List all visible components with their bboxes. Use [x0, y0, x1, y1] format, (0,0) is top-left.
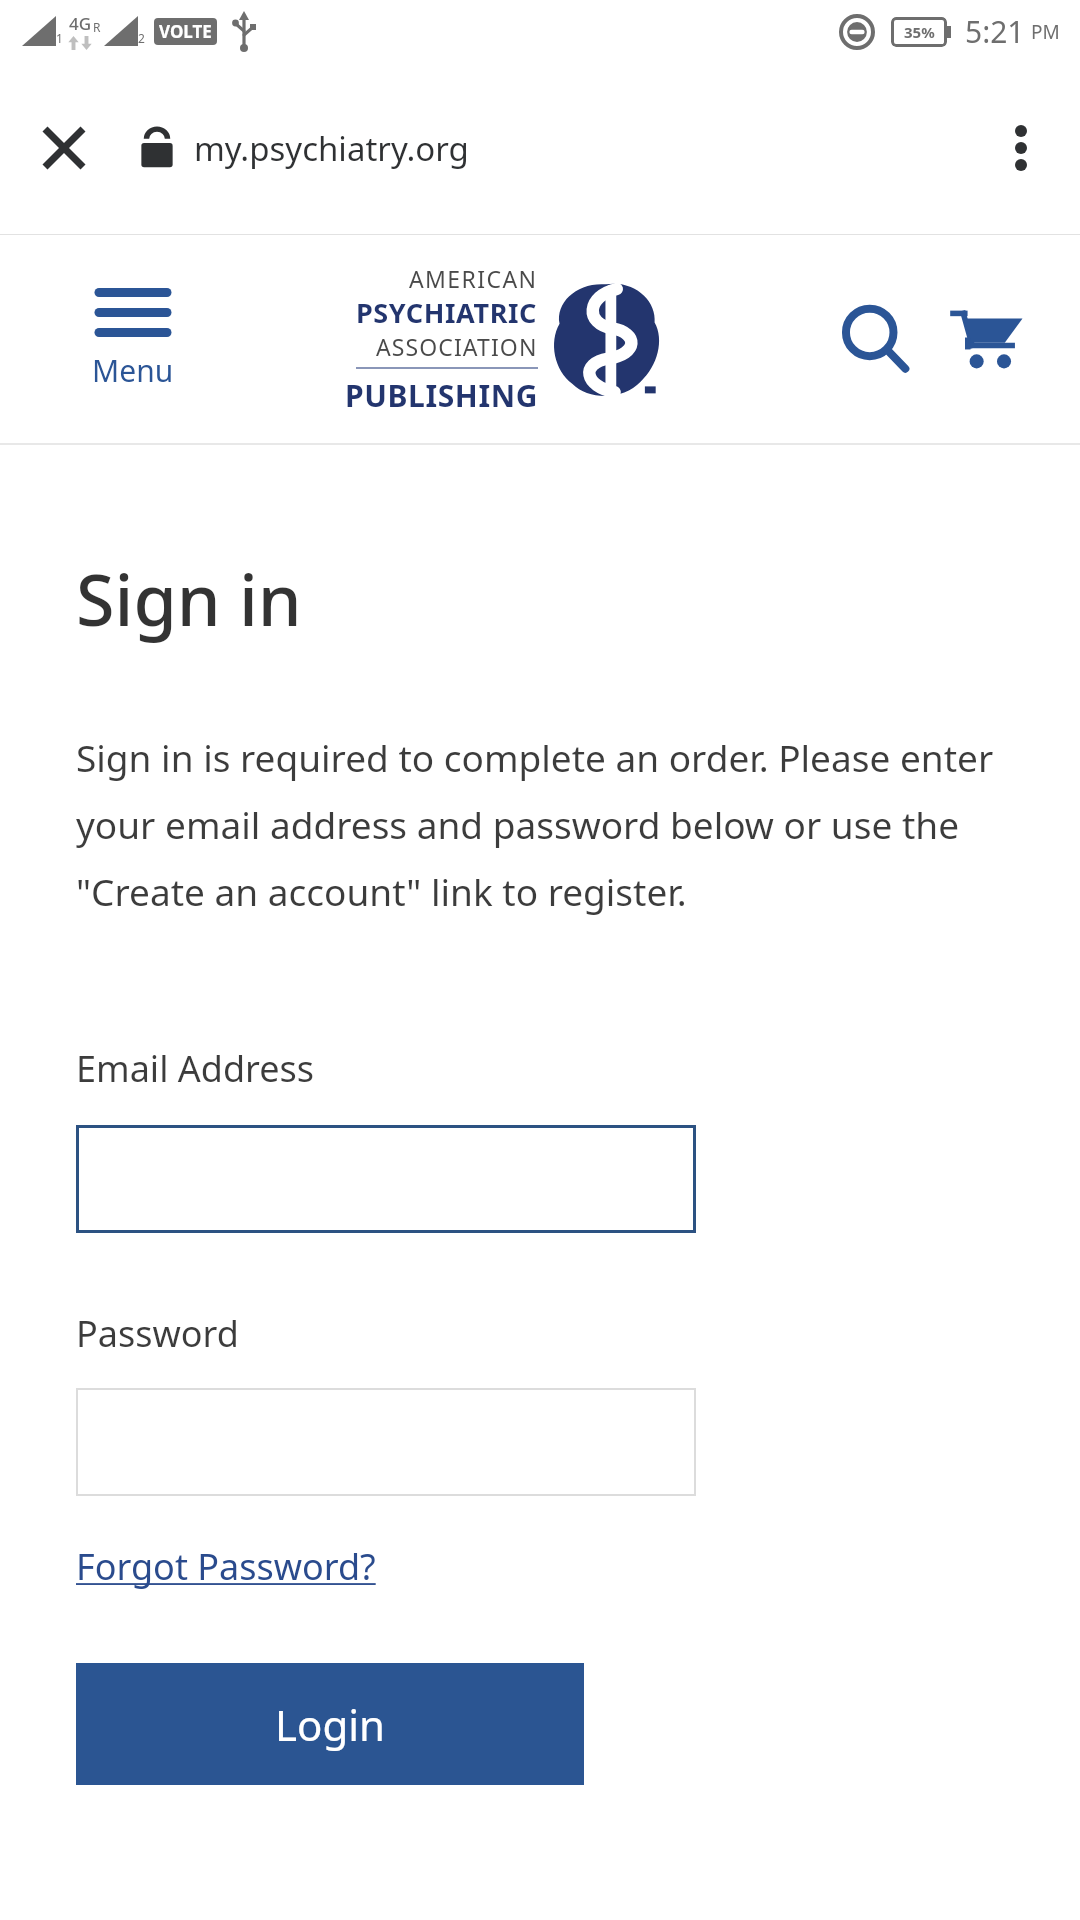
staticText: Sign in is required to complete an order…	[76, 732, 1020, 916]
staticText: PM	[1031, 19, 1060, 45]
button[interactable]: Menu	[92, 288, 174, 391]
button[interactable]: Email Address input	[76, 1125, 696, 1233]
staticText: 35%	[904, 22, 935, 42]
button[interactable]: Login	[76, 1663, 584, 1785]
staticText: 1	[56, 30, 63, 46]
staticText: Forgot Password?	[76, 1542, 376, 1591]
staticText: Login	[275, 1696, 386, 1753]
staticText: Menu	[92, 350, 174, 391]
button[interactable]: Forgot Password?	[76, 1542, 376, 1591]
staticText: 2	[138, 30, 145, 46]
staticText: Sign in	[76, 551, 302, 646]
staticText: PUBLISHING	[345, 375, 538, 416]
button[interactable]: Password input	[76, 1388, 696, 1496]
staticText: VOLTE	[159, 20, 212, 43]
staticText: AMERICAN	[409, 263, 538, 294]
staticText: Email Address	[76, 1044, 315, 1093]
button[interactable]: Search	[832, 296, 918, 382]
staticText: my.psychiatry.org	[194, 126, 469, 171]
staticText: 5:21	[965, 11, 1025, 52]
staticText: R	[93, 19, 101, 35]
staticText: ASSOCIATION	[376, 331, 538, 362]
staticText: 4G	[69, 12, 92, 35]
staticText: PSYCHIATRIC	[356, 294, 538, 331]
button[interactable]: Close	[26, 110, 102, 186]
staticText: Password	[76, 1309, 239, 1358]
button[interactable]: More options	[984, 111, 1058, 185]
button[interactable]: Shopping cart	[942, 294, 1032, 384]
